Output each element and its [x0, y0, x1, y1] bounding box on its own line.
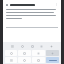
button[interactable]: Key 1 — [5, 50, 17, 56]
button[interactable]: Done — [46, 57, 59, 63]
button[interactable]: Toolbar action 5 — [49, 44, 54, 49]
button[interactable]: Key 7 — [32, 57, 45, 63]
button[interactable]: Key 6 — [18, 57, 31, 63]
button[interactable]: Toolbar action 1 — [10, 44, 15, 49]
button[interactable]: Text input field — [6, 23, 58, 28]
button[interactable]: Toolbar action 2 — [20, 44, 25, 49]
button[interactable]: More options — [55, 3, 58, 6]
button[interactable]: Key 3 — [32, 50, 45, 56]
button[interactable]: More options — [6, 3, 58, 6]
button[interactable]: Toolbar action 3 — [30, 44, 35, 49]
button[interactable]: Key 2 — [18, 50, 31, 56]
button[interactable]: Key 4 — [46, 50, 59, 56]
button[interactable]: Toolbar action 4 — [39, 44, 44, 49]
button[interactable]: Key 5 — [5, 57, 17, 63]
